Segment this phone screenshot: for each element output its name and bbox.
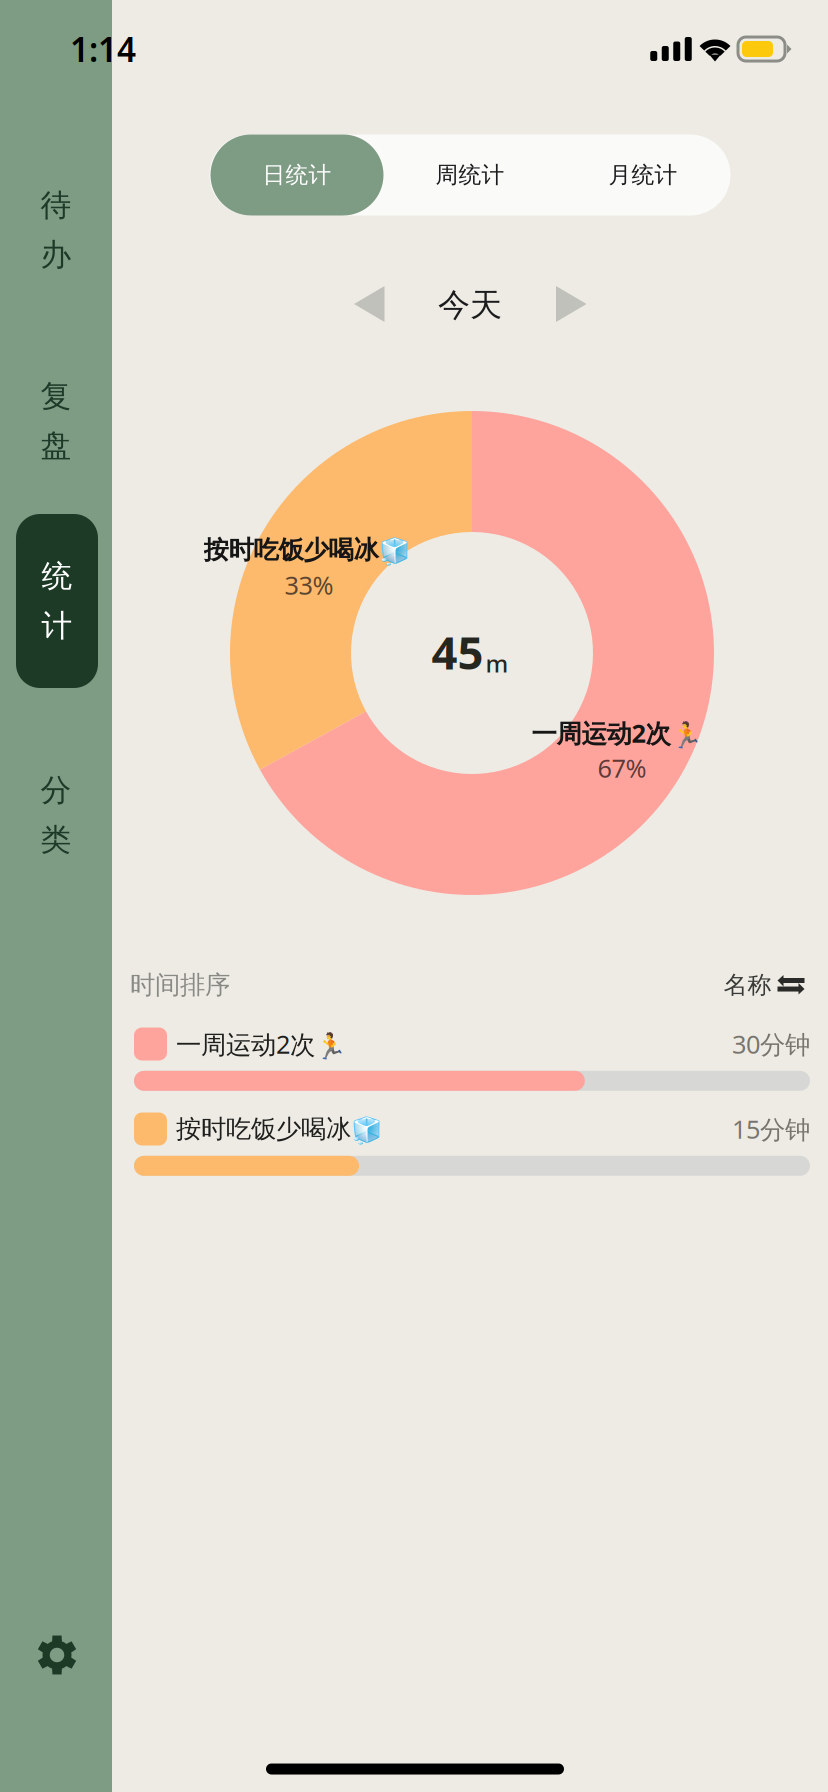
button[interactable]: 待 bbox=[15, 143, 97, 317]
staticText: 名称 bbox=[723, 970, 771, 1000]
button[interactable]: 分 bbox=[15, 728, 97, 902]
staticText: 统 bbox=[41, 557, 72, 595]
button[interactable]: Previous day bbox=[335, 276, 403, 332]
staticText: 一周运动2次🏃 bbox=[531, 716, 702, 750]
staticText: 按时吃饭少喝冰🧊 bbox=[203, 534, 410, 565]
staticText: 30分钟 bbox=[732, 1027, 810, 1061]
button[interactable]: 名称 bbox=[723, 970, 804, 1000]
staticText: 今天 bbox=[438, 285, 502, 325]
staticText: 日统计 bbox=[262, 161, 331, 189]
staticText: 67% bbox=[597, 751, 646, 785]
button[interactable]: 复 bbox=[15, 334, 97, 508]
staticText: 类 bbox=[40, 821, 71, 859]
button[interactable]: 周统计 bbox=[383, 134, 556, 215]
button[interactable]: 统 bbox=[16, 514, 98, 688]
staticText: 时间排序 bbox=[130, 969, 230, 1000]
staticText: 45 bbox=[431, 622, 483, 682]
staticText: 33% bbox=[284, 568, 333, 602]
staticText: 周统计 bbox=[435, 161, 504, 189]
button[interactable]: 日统计 bbox=[210, 134, 383, 215]
staticText: 月统计 bbox=[608, 161, 677, 189]
staticText: m bbox=[485, 647, 508, 679]
staticText: 1:14 bbox=[70, 27, 136, 71]
staticText: 待 bbox=[40, 186, 71, 224]
staticText: 一周运动2次🏃 bbox=[176, 1027, 347, 1061]
staticText: 盘 bbox=[40, 427, 71, 465]
staticText: 办 bbox=[40, 236, 71, 274]
staticText: 计 bbox=[41, 607, 72, 645]
button[interactable]: Next day bbox=[537, 276, 605, 332]
button[interactable]: 月统计 bbox=[556, 134, 729, 215]
button[interactable]: Settings bbox=[17, 1615, 97, 1695]
staticText: 分 bbox=[40, 771, 71, 809]
staticText: 15分钟 bbox=[732, 1112, 810, 1146]
staticText: 按时吃饭少喝冰🧊 bbox=[176, 1113, 383, 1144]
staticText: 复 bbox=[40, 377, 71, 415]
